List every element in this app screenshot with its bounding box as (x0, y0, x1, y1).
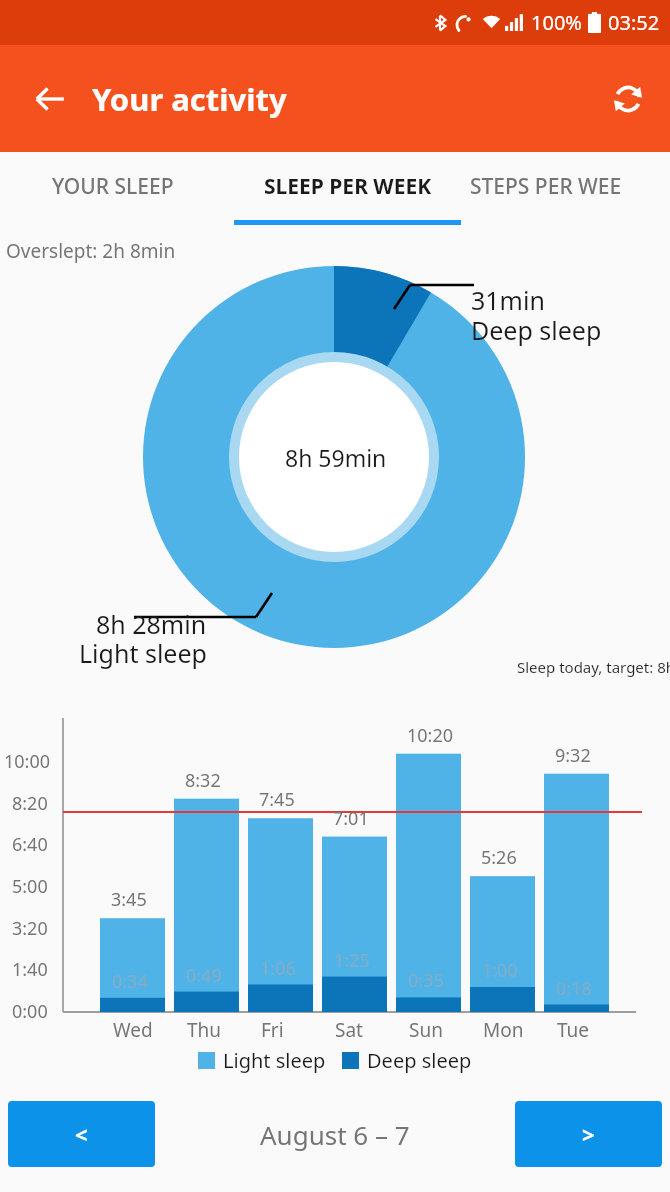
button[interactable]: STEPS PER WEE (470, 152, 670, 236)
staticText: Sat (335, 1017, 363, 1043)
staticText: August 6 – 7 (260, 1117, 410, 1152)
staticText: 0:34 (112, 969, 148, 994)
staticText: Wed (113, 1017, 153, 1043)
staticText: STEPS PER WEE (470, 172, 622, 201)
staticText: 1:40 (12, 957, 48, 982)
button[interactable]: YOUR SLEEP (0, 152, 225, 236)
staticText: 10:20 (407, 723, 454, 748)
staticText: Deep sleep (367, 1047, 472, 1074)
staticText: Tue (557, 1017, 590, 1043)
staticText: 7:45 (259, 787, 295, 812)
button[interactable]: Back (26, 75, 74, 123)
staticText: Mon (483, 1017, 524, 1043)
staticText: Sleep today, target: 8h (517, 657, 670, 677)
staticText: Your activity (92, 78, 287, 120)
staticText: Thu (187, 1017, 222, 1043)
staticText: 0:49 (186, 963, 222, 988)
staticText: 9:32 (555, 743, 591, 768)
staticText: 100% (531, 9, 582, 36)
staticText: < (75, 1119, 88, 1149)
staticText: 8h 28min (96, 607, 207, 641)
staticText: 3:45 (111, 887, 147, 912)
staticText: 0:35 (408, 968, 444, 993)
staticText: 6:40 (12, 832, 48, 857)
staticText: 1:25 (334, 948, 370, 973)
staticText: > (582, 1119, 595, 1149)
staticText: 1:06 (260, 956, 296, 981)
staticText: 8:32 (185, 768, 221, 793)
staticText: 5:00 (12, 874, 48, 899)
staticText: 0:00 (12, 999, 48, 1024)
button[interactable]: SLEEP PER WEEK (225, 152, 470, 236)
staticText: 5:26 (481, 845, 517, 870)
button[interactable]: Refresh (604, 75, 652, 123)
button[interactable]: Next week (515, 1101, 662, 1167)
staticText: Overslept: 2h 8min (6, 238, 176, 264)
staticText: 0:18 (556, 976, 592, 1001)
staticText: Sun (409, 1017, 443, 1043)
staticText: 8:20 (12, 791, 48, 816)
staticText: 31min Deep sleep (471, 283, 602, 347)
staticText: Light sleep (223, 1047, 326, 1074)
staticText: 10:00 (4, 749, 51, 774)
staticText: YOUR SLEEP (52, 172, 174, 201)
staticText: 3:20 (12, 916, 48, 941)
staticText: 1:00 (482, 958, 518, 983)
staticText: Light sleep (79, 636, 207, 670)
staticText: 7:01 (333, 806, 369, 831)
staticText: Fri (261, 1017, 284, 1043)
button[interactable]: Previous week (8, 1101, 155, 1167)
staticText: SLEEP PER WEEK (264, 172, 432, 201)
staticText: 8h 59min (285, 442, 387, 473)
staticText: 03:52 (608, 9, 660, 36)
